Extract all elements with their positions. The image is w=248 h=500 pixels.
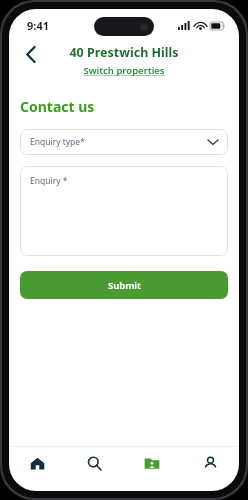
- button[interactable]: Back: [17, 40, 45, 68]
- staticText: Enquiry type*: [30, 136, 85, 148]
- staticText: Contact us: [20, 97, 95, 116]
- button[interactable]: Profile: [181, 447, 239, 479]
- staticText: Enquiry *: [30, 175, 68, 187]
- button[interactable]: Enquiry type*: [20, 129, 228, 155]
- staticText: Switch properties: [83, 64, 165, 77]
- button[interactable]: Search: [66, 447, 123, 479]
- button[interactable]: Home: [9, 447, 66, 479]
- button[interactable]: Submit: [20, 271, 228, 299]
- button[interactable]: Documents: [123, 447, 181, 479]
- staticText: 40 Prestwich Hills: [69, 44, 179, 61]
- staticText: 9:41: [27, 18, 49, 33]
- staticText: Submit: [108, 279, 141, 292]
- button[interactable]: Switch properties: [83, 64, 165, 77]
- button[interactable]: Enquiry *: [20, 166, 228, 256]
